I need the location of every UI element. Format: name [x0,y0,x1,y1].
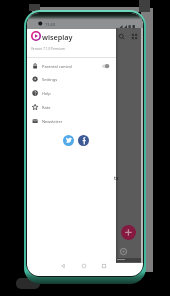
staticText: Version 7.1.0 Premium [31,47,65,51]
button[interactable] [58,261,68,271]
staticText: Rate [42,105,51,110]
button[interactable]: Newsletter [27,114,116,128]
button[interactable]: Parental control [27,59,116,73]
button[interactable] [79,261,89,271]
button[interactable] [130,32,139,41]
button[interactable] [121,225,136,240]
button[interactable] [99,61,112,71]
staticText: ts [114,175,119,182]
staticText: wiseplay [42,32,73,42]
staticText: Newsletter [42,119,63,124]
button[interactable] [99,261,109,271]
button[interactable] [117,32,126,41]
button[interactable]: Rate [27,100,116,114]
staticText: Settings [42,77,58,82]
staticText: 11:23 [45,22,55,27]
staticText: Help [42,91,51,96]
button[interactable]: Settings [27,72,116,86]
button[interactable] [78,135,89,146]
button[interactable]: Help [27,86,116,100]
button[interactable] [63,135,74,146]
staticText: Parental control [42,64,73,69]
button[interactable] [120,248,127,255]
